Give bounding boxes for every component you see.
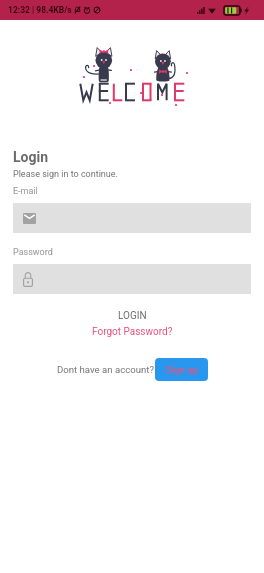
- staticText: Sign up: [166, 364, 198, 375]
- staticText: 12:32 | 98.4KB/s: [8, 5, 72, 15]
- button[interactable]: LOGIN: [0, 309, 264, 323]
- staticText: Dont have an account?: [57, 364, 154, 375]
- staticText: Password: [13, 247, 53, 258]
- button[interactable]: Forgot Password?: [0, 325, 264, 339]
- other: Password: [23, 272, 33, 287]
- button[interactable]: Sign up: [155, 358, 208, 381]
- staticText: Forgot Password?: [92, 326, 173, 338]
- staticText: Login: [13, 149, 49, 165]
- other: Email: [23, 213, 36, 224]
- staticText: E-mail: [13, 186, 38, 197]
- button[interactable]: Email: [13, 203, 251, 233]
- staticText: Please sign in to continue.: [13, 169, 118, 180]
- button[interactable]: Password: [13, 264, 251, 294]
- staticText: LOGIN: [118, 310, 147, 322]
